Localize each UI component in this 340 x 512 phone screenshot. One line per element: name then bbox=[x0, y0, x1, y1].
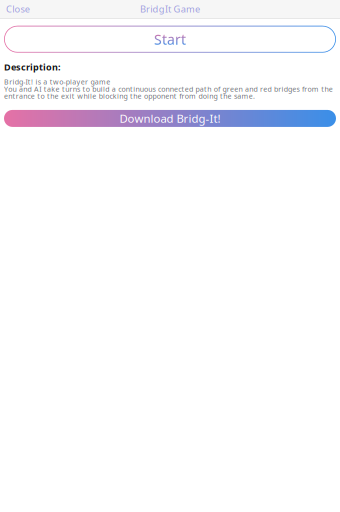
staticText: Download Bridg-It! bbox=[119, 111, 220, 126]
staticText: BridgIt Game bbox=[140, 3, 200, 15]
button[interactable] bbox=[4, 26, 336, 53]
button[interactable]: Close bbox=[0, 0, 40, 18]
staticText: Bridg-It! is a two-player game You and A… bbox=[4, 77, 333, 101]
button[interactable]: Download Bridg-It! bbox=[4, 110, 336, 127]
staticText: Description: bbox=[4, 61, 61, 73]
staticText: Close bbox=[6, 3, 30, 15]
